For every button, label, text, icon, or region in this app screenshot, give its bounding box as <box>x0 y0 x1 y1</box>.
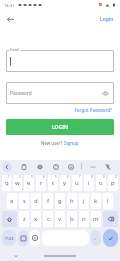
button[interactable]: j <box>79 193 89 209</box>
button[interactable]: Theme <box>51 162 60 171</box>
button[interactable]: Backspace <box>103 211 118 227</box>
button[interactable]: e <box>24 175 34 191</box>
button[interactable]: p <box>108 175 118 191</box>
staticText: 8 <box>91 175 93 179</box>
staticText: y <box>63 179 67 187</box>
staticText: m <box>93 215 99 223</box>
staticText: Password <box>10 90 32 97</box>
button[interactable]: Clipboard <box>19 162 28 171</box>
button[interactable]: r <box>36 175 46 191</box>
staticText: p <box>111 179 115 187</box>
button[interactable]: l <box>103 193 113 209</box>
button[interactable]: u <box>72 175 82 191</box>
staticText: s <box>23 197 26 205</box>
button[interactable]: t <box>48 175 58 191</box>
button[interactable]: f <box>43 193 53 209</box>
staticText: i <box>88 179 90 187</box>
button[interactable]: Expand toolbar <box>2 162 12 172</box>
staticText: f <box>47 197 50 205</box>
button[interactable]: d <box>31 193 41 209</box>
staticText: 2 <box>19 175 21 179</box>
staticText: 7 <box>79 175 81 179</box>
button[interactable]: h <box>67 193 77 209</box>
button[interactable]: Password <box>10 82 110 104</box>
staticText: c <box>47 215 50 223</box>
staticText: h <box>70 197 74 205</box>
button[interactable]: Login <box>100 16 114 23</box>
staticText: 14:31 <box>4 3 15 8</box>
staticText: New user? <box>41 140 64 146</box>
staticText: ?123 <box>5 236 14 241</box>
button[interactable]: Forgot Password? <box>0 107 112 113</box>
staticText: w <box>15 179 20 187</box>
staticText: u <box>75 179 79 187</box>
button[interactable]: z <box>19 211 29 227</box>
button[interactable]: b <box>67 211 77 227</box>
staticText: a <box>10 197 14 205</box>
button[interactable]: Emoji sticker <box>18 230 28 246</box>
staticText: o <box>99 179 103 187</box>
staticText: q <box>5 179 9 187</box>
button[interactable]: Emoji <box>30 230 40 246</box>
staticText: x <box>34 215 38 223</box>
button[interactable]: x <box>31 211 41 227</box>
staticText: n <box>82 215 86 223</box>
button[interactable]: Show password <box>101 89 110 98</box>
staticText: LOGIN <box>52 124 68 131</box>
button[interactable]: Enter <box>103 229 118 247</box>
button[interactable]: o <box>96 175 106 191</box>
button[interactable]: s <box>19 193 29 209</box>
button[interactable]: k <box>91 193 101 209</box>
staticText: 1 <box>8 175 10 179</box>
button[interactable]: ?123 <box>2 230 16 246</box>
button[interactable]: More <box>88 162 97 171</box>
button[interactable]: n <box>79 211 89 227</box>
staticText: 0 <box>115 175 117 179</box>
button[interactable]: Microphone off <box>103 162 112 171</box>
button[interactable]: y <box>60 175 70 191</box>
staticText: k <box>94 197 98 205</box>
button[interactable]: v <box>55 211 65 227</box>
staticText: l <box>107 197 109 205</box>
staticText: r <box>40 179 43 187</box>
staticText: 5 <box>55 175 57 179</box>
button[interactable]: . <box>91 230 101 246</box>
staticText: 9 <box>103 175 105 179</box>
button[interactable]: Translate <box>66 162 75 171</box>
button[interactable]: Shift <box>2 211 17 227</box>
button[interactable]: m <box>91 211 101 227</box>
staticText: 6 <box>67 175 69 179</box>
button[interactable]: Space <box>42 230 89 246</box>
staticText: Email <box>10 47 20 52</box>
staticText: t <box>52 179 55 187</box>
staticText: g <box>58 197 62 205</box>
staticText: 3 <box>31 175 33 179</box>
button[interactable]: c <box>43 211 53 227</box>
button[interactable]: q <box>2 175 11 191</box>
button[interactable]: Signup <box>64 140 79 146</box>
button[interactable]: Settings <box>35 162 44 171</box>
button[interactable]: g <box>55 193 65 209</box>
button[interactable]: i <box>84 175 94 191</box>
staticText: . <box>95 235 97 242</box>
button[interactable]: a <box>7 193 17 209</box>
button[interactable]: w <box>13 175 22 191</box>
staticText: b <box>70 215 74 223</box>
staticText: d <box>34 197 38 205</box>
staticText: z <box>23 215 26 223</box>
staticText: e <box>27 179 31 187</box>
button[interactable]: Back <box>4 13 16 25</box>
staticText: j <box>83 197 85 205</box>
button[interactable]: LOGIN <box>6 119 114 135</box>
button[interactable]: Hide keyboard <box>12 252 20 260</box>
staticText: 4 <box>43 175 45 179</box>
staticText: v <box>58 215 62 223</box>
button[interactable] <box>6 50 114 72</box>
